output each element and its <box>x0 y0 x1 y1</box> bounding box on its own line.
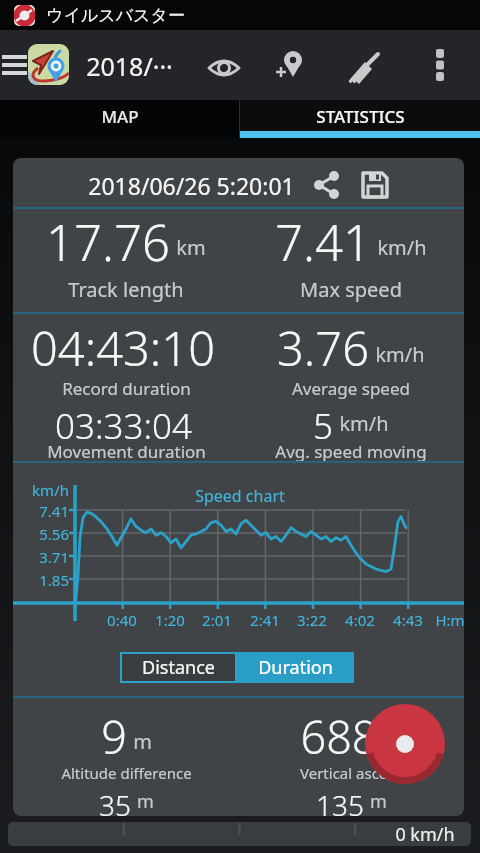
staticText: m <box>384 728 403 755</box>
staticText: STATISTICS <box>316 105 405 128</box>
button[interactable] <box>346 52 386 92</box>
button[interactable] <box>428 48 452 82</box>
button[interactable] <box>365 704 445 784</box>
staticText: Avg. speed moving <box>275 440 427 462</box>
staticText: 2018/··· <box>86 49 173 83</box>
staticText: MAP <box>101 105 139 128</box>
staticText: km/h <box>339 410 389 437</box>
staticText: 5 <box>313 402 333 442</box>
staticText: 4:02 <box>340 610 380 630</box>
button[interactable]: Duration <box>237 652 354 683</box>
staticText: 3:22 <box>292 610 332 630</box>
button[interactable] <box>203 52 245 84</box>
staticText: km <box>176 234 206 261</box>
staticText: 2:01 <box>197 610 237 630</box>
staticText: 135 <box>316 786 364 816</box>
staticText: 1.85 <box>27 570 69 590</box>
staticText: m <box>133 728 152 755</box>
staticText: m <box>137 789 154 814</box>
staticText: 7.41 <box>27 501 69 521</box>
button[interactable] <box>270 48 310 88</box>
staticText: Distance <box>142 655 215 680</box>
staticText: 5.56 <box>27 524 69 544</box>
staticText: 0 km/h <box>395 822 455 846</box>
staticText: Average speed <box>292 377 410 400</box>
staticText: Movement duration <box>47 440 206 462</box>
staticText: 3.76 <box>277 316 369 376</box>
staticText: 688 <box>300 706 378 762</box>
staticText: Track length <box>68 276 184 302</box>
button[interactable]: Distance <box>120 652 237 683</box>
staticText: Max speed <box>300 276 402 302</box>
staticText: 17.76 <box>46 209 170 269</box>
staticText: Vertical ascent <box>300 763 402 783</box>
staticText: 9 <box>101 706 127 762</box>
staticText: Altitude difference <box>61 763 192 783</box>
button[interactable] <box>361 171 389 199</box>
staticText: Record duration <box>62 377 191 400</box>
staticText: km/h <box>375 341 425 368</box>
staticText: km/h <box>27 480 69 500</box>
button[interactable] <box>28 44 69 85</box>
button[interactable]: 0 km/h <box>8 822 471 846</box>
staticText: H:m <box>430 610 464 630</box>
staticText: Duration <box>258 655 333 680</box>
staticText: km/h <box>377 234 427 261</box>
button[interactable]: MAP <box>0 100 239 138</box>
staticText: 04:43:10 <box>31 316 215 376</box>
staticText: ウイルスバスター <box>46 5 185 26</box>
staticText: 3.71 <box>27 547 69 567</box>
staticText: 4:43 <box>388 610 428 630</box>
staticText: 7.41 <box>275 209 371 269</box>
staticText: 1:20 <box>150 610 190 630</box>
button[interactable] <box>313 171 341 199</box>
staticText: 2018/06/26 5:20:01 <box>88 170 295 201</box>
button[interactable]: STATISTICS <box>240 100 480 138</box>
staticText: 2:41 <box>245 610 285 630</box>
staticText: 0:40 <box>102 610 142 630</box>
staticText: m <box>370 789 387 814</box>
staticText: 35 <box>99 786 131 816</box>
staticText: Speed chart <box>195 485 285 507</box>
staticText: 03:33:04 <box>55 402 192 442</box>
